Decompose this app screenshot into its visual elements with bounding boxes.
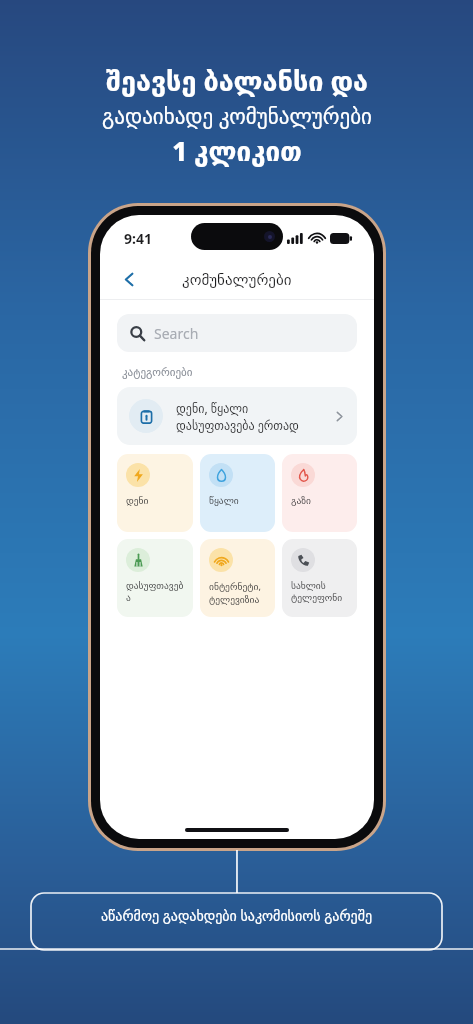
staticText: 1 კლიკით: [172, 133, 302, 168]
staticText: კომუნალურები: [182, 271, 292, 288]
staticText: დენი: [126, 495, 149, 506]
button[interactable]: წყალი: [200, 454, 275, 532]
staticText: გადაიხადე კომუნალურები: [102, 102, 372, 131]
staticText: შეავსე ბალანსი და: [106, 62, 368, 99]
staticText: დენი, წყალი: [176, 400, 249, 416]
button[interactable]: დასუფთავება: [117, 539, 193, 617]
button[interactable]: დენი, წყალი: [117, 387, 357, 445]
button[interactable]: Back: [112, 262, 146, 296]
staticText: 9:41: [124, 229, 152, 248]
button[interactable]: დენი: [117, 454, 193, 532]
staticText: Search: [154, 324, 199, 343]
staticText: გაზი: [291, 495, 312, 506]
staticText: კატეგორიები: [122, 366, 193, 379]
staticText: წყალი: [209, 495, 239, 506]
staticText: დასუფთავება: [126, 580, 188, 603]
button[interactable]: ინტერნეტი, ტელევიზია: [200, 539, 275, 617]
staticText: ინტერნეტი, ტელევიზია: [209, 580, 261, 605]
staticText: დასუფთავება ერთად: [176, 417, 299, 433]
button[interactable]: გაზი: [282, 454, 357, 532]
staticText: სახლის ტელეფონი: [291, 580, 343, 603]
staticText: აწარმოე გადახდები საკომისიოს გარეშე: [101, 906, 372, 925]
button[interactable]: სახლის ტელეფონი: [282, 539, 357, 617]
button[interactable]: Search: [117, 314, 357, 352]
